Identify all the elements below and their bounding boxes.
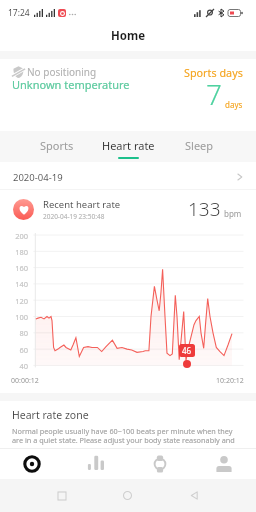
- staticText: 46: [182, 345, 192, 356]
- staticText: 17:24: [8, 7, 30, 19]
- staticText: 60: [6, 345, 28, 355]
- staticText: Heart rate zone: [12, 408, 89, 422]
- staticText: Sleep: [185, 138, 214, 153]
- staticText: 140: [6, 279, 28, 289]
- staticText: 100: [6, 312, 28, 322]
- staticText: 2020-04-19: [13, 171, 63, 184]
- staticText: Sports days: [184, 65, 243, 80]
- button[interactable]: Home: [0, 448, 64, 479]
- staticText: 120: [6, 296, 28, 306]
- staticText: days: [225, 99, 243, 110]
- staticText: Recent heart rate: [43, 198, 121, 211]
- staticText: 10:20:12: [216, 376, 244, 386]
- staticText: Normal people usually have 60~100 beats …: [12, 426, 244, 445]
- staticText: 200: [6, 231, 28, 241]
- button[interactable]: Heart rate: [93, 131, 164, 162]
- staticText: No positioning: [27, 65, 97, 79]
- staticText: 7: [206, 75, 222, 113]
- button[interactable]: Profile: [192, 448, 256, 479]
- staticText: bpm: [224, 208, 242, 219]
- staticText: Heart rate: [102, 138, 155, 153]
- button[interactable]: Sleep: [164, 131, 235, 162]
- staticText: 40: [6, 361, 28, 371]
- staticText: 00:00:12: [11, 376, 39, 386]
- staticText: Sports: [40, 138, 74, 153]
- staticText: 80: [6, 328, 28, 338]
- staticText: 180: [6, 247, 28, 257]
- staticText: 160: [6, 263, 28, 273]
- staticText: 2020-04-19 23:50:48: [43, 212, 105, 221]
- staticText: 133: [188, 196, 221, 222]
- button[interactable]: Statistics: [64, 448, 128, 479]
- button[interactable]: Devices: [128, 448, 192, 479]
- staticText: Unknown temperature: [12, 77, 130, 92]
- staticText: Home: [111, 28, 146, 44]
- button[interactable]: 2020-04-19: [0, 163, 256, 191]
- button[interactable]: Sports: [21, 131, 93, 162]
